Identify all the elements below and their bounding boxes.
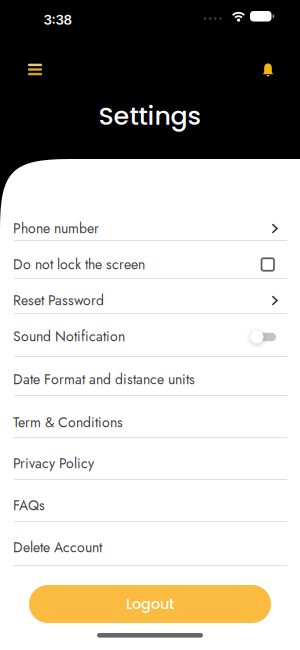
staticText: Term & Conditions <box>13 412 123 433</box>
button[interactable]: Sound Notification <box>13 321 287 351</box>
button[interactable]: Term & Conditions <box>13 407 287 437</box>
button[interactable]: Notifications <box>255 57 281 83</box>
staticText: Do not lock the screen <box>13 254 145 275</box>
button[interactable]: Phone number <box>13 213 287 243</box>
button[interactable]: Logout <box>29 585 271 623</box>
staticText: Logout <box>126 594 174 614</box>
button[interactable]: Do not lock the screen <box>13 249 287 279</box>
staticText: Delete Account <box>13 537 102 558</box>
button[interactable]: Delete Account <box>13 532 287 562</box>
staticText: Settings <box>98 98 201 134</box>
staticText: Reset Password <box>13 290 104 311</box>
staticText: FAQs <box>13 495 45 516</box>
button[interactable]: Menu <box>21 56 49 82</box>
staticText: Privacy Policy <box>13 453 94 474</box>
button[interactable]: Privacy Policy <box>13 448 287 478</box>
button[interactable]: Reset Password <box>13 285 287 315</box>
button[interactable]: Date Format and distance units <box>13 364 287 394</box>
button[interactable]: FAQs <box>13 490 287 520</box>
staticText: 3:38 <box>43 12 72 28</box>
staticText: Sound Notification <box>13 326 125 347</box>
staticText: Phone number <box>13 218 99 239</box>
staticText: Date Format and distance units <box>13 369 195 390</box>
